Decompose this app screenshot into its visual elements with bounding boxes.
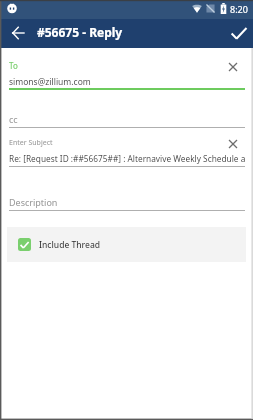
button[interactable]: Clear recipient: [223, 57, 243, 77]
staticText: Re: [Request ID :##56675##] : Alternaviv…: [9, 153, 246, 164]
button[interactable]: Back: [5, 18, 31, 47]
staticText: Description: [9, 196, 58, 208]
staticText: Enter Subject: [9, 138, 53, 148]
button[interactable]: Include Thread: [7, 227, 246, 262]
button[interactable]: Send: [225, 19, 253, 48]
staticText: 8:20: [230, 3, 248, 15]
staticText: Include Thread: [39, 239, 101, 251]
staticText: #56675 - Reply: [37, 24, 123, 40]
staticText: To: [9, 60, 18, 71]
staticText: simons@zillium.com: [9, 76, 91, 88]
button[interactable]: Clear subject: [223, 134, 243, 154]
staticText: cc: [9, 113, 18, 125]
